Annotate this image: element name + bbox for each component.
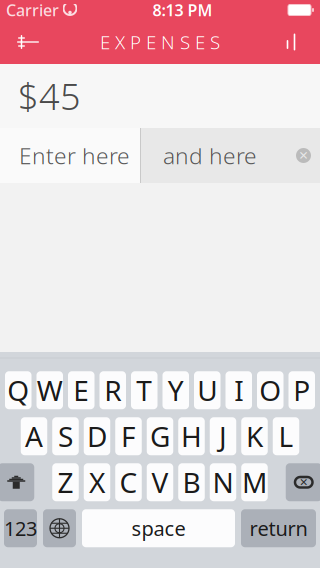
- button[interactable]: F: [115, 417, 142, 455]
- button[interactable]: X: [84, 463, 110, 501]
- staticText: O: [259, 372, 281, 409]
- button[interactable]: K: [241, 417, 268, 455]
- button[interactable]: V: [147, 463, 173, 501]
- button[interactable]: R: [99, 371, 126, 409]
- staticText: Y: [168, 372, 184, 409]
- button[interactable]: U: [194, 371, 220, 409]
- staticText: W: [37, 372, 63, 409]
- button[interactable]: Shift: [0, 463, 34, 501]
- button[interactable]: and here: [141, 128, 320, 183]
- button[interactable]: H: [178, 417, 205, 455]
- staticText: $45: [18, 72, 81, 120]
- button[interactable]: space: [82, 509, 235, 547]
- staticText: K: [246, 418, 263, 455]
- button[interactable]: M: [241, 463, 268, 501]
- button[interactable]: P: [288, 371, 315, 409]
- button[interactable]: I: [225, 371, 252, 409]
- button[interactable]: T: [131, 371, 157, 409]
- staticText: A: [25, 418, 43, 455]
- staticText: 8:13 PM: [152, 0, 212, 21]
- staticText: Z: [57, 464, 73, 501]
- staticText: V: [151, 464, 168, 501]
- button[interactable]: B: [178, 463, 205, 501]
- staticText: E X P E N S E S: [100, 30, 220, 54]
- staticText: E: [73, 372, 89, 409]
- staticText: M: [242, 464, 267, 501]
- staticText: I: [234, 372, 243, 409]
- staticText: G: [150, 418, 170, 455]
- button[interactable]: O: [257, 371, 283, 409]
- staticText: space: [131, 515, 185, 542]
- staticText: Enter here: [19, 140, 130, 170]
- staticText: T: [136, 372, 152, 409]
- button[interactable]: Delete: [286, 463, 320, 501]
- staticText: L: [278, 418, 293, 455]
- button[interactable]: G: [147, 417, 173, 455]
- button[interactable]: E: [68, 371, 94, 409]
- staticText: D: [87, 418, 107, 455]
- staticText: J: [219, 418, 227, 455]
- staticText: R: [104, 372, 121, 409]
- staticText: C: [119, 464, 137, 501]
- staticText: 123: [4, 515, 37, 542]
- staticText: S: [58, 418, 73, 455]
- button[interactable]: S: [52, 417, 79, 455]
- staticText: return: [249, 515, 307, 542]
- staticText: H: [181, 418, 202, 455]
- staticText: F: [121, 418, 136, 455]
- staticText: and here: [163, 140, 257, 170]
- button[interactable]: W: [36, 371, 63, 409]
- button[interactable]: Z: [52, 463, 79, 501]
- button[interactable]: Enter here: [0, 128, 140, 183]
- button[interactable]: Save: [264, 20, 320, 64]
- staticText: P: [293, 372, 310, 409]
- button[interactable]: Back: [0, 20, 56, 64]
- button[interactable]: return: [241, 509, 316, 547]
- staticText: N: [212, 464, 233, 501]
- staticText: U: [197, 372, 217, 409]
- button[interactable]: J: [210, 417, 236, 455]
- button[interactable]: A: [21, 417, 47, 455]
- button[interactable]: Next keyboard: [43, 509, 76, 547]
- button[interactable]: 123: [4, 509, 37, 547]
- button[interactable]: Y: [162, 371, 189, 409]
- button[interactable]: N: [210, 463, 236, 501]
- staticText: Q: [7, 372, 29, 409]
- staticText: B: [182, 464, 200, 501]
- button[interactable]: Q: [5, 371, 31, 409]
- button[interactable]: C: [115, 463, 142, 501]
- staticText: Carrier: [6, 0, 59, 21]
- button[interactable]: L: [273, 417, 299, 455]
- staticText: X: [89, 464, 105, 501]
- button[interactable]: D: [84, 417, 110, 455]
- staticText: ✕: [298, 149, 308, 162]
- staticText: ✕: [299, 476, 308, 488]
